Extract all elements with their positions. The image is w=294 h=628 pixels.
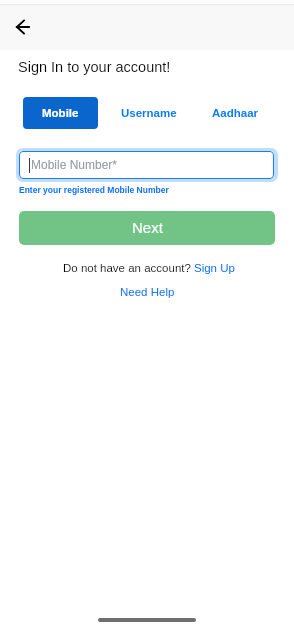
button[interactable]: Next [19, 211, 275, 245]
button[interactable]: Back [5, 9, 40, 44]
staticText: Enter your registered Mobile Number [19, 185, 169, 194]
button[interactable]: Mobile [23, 97, 98, 129]
staticText: Mobile [42, 107, 79, 120]
staticText: Sign Up [194, 262, 235, 275]
staticText: Next [132, 219, 163, 236]
button[interactable]: Username [121, 97, 177, 129]
button[interactable]: Aadhaar [212, 97, 259, 129]
button[interactable]: Need Help [120, 286, 175, 299]
button[interactable]: Mobile Number* [19, 151, 274, 179]
staticText: Do not have an account? [63, 262, 191, 275]
staticText: Aadhaar [212, 107, 259, 120]
staticText: Mobile Number* [31, 158, 118, 171]
button[interactable]: Sign Up [194, 262, 235, 275]
staticText: Username [121, 107, 177, 120]
staticText: Sign In to your account! [18, 59, 171, 75]
staticText: Need Help [120, 286, 175, 299]
